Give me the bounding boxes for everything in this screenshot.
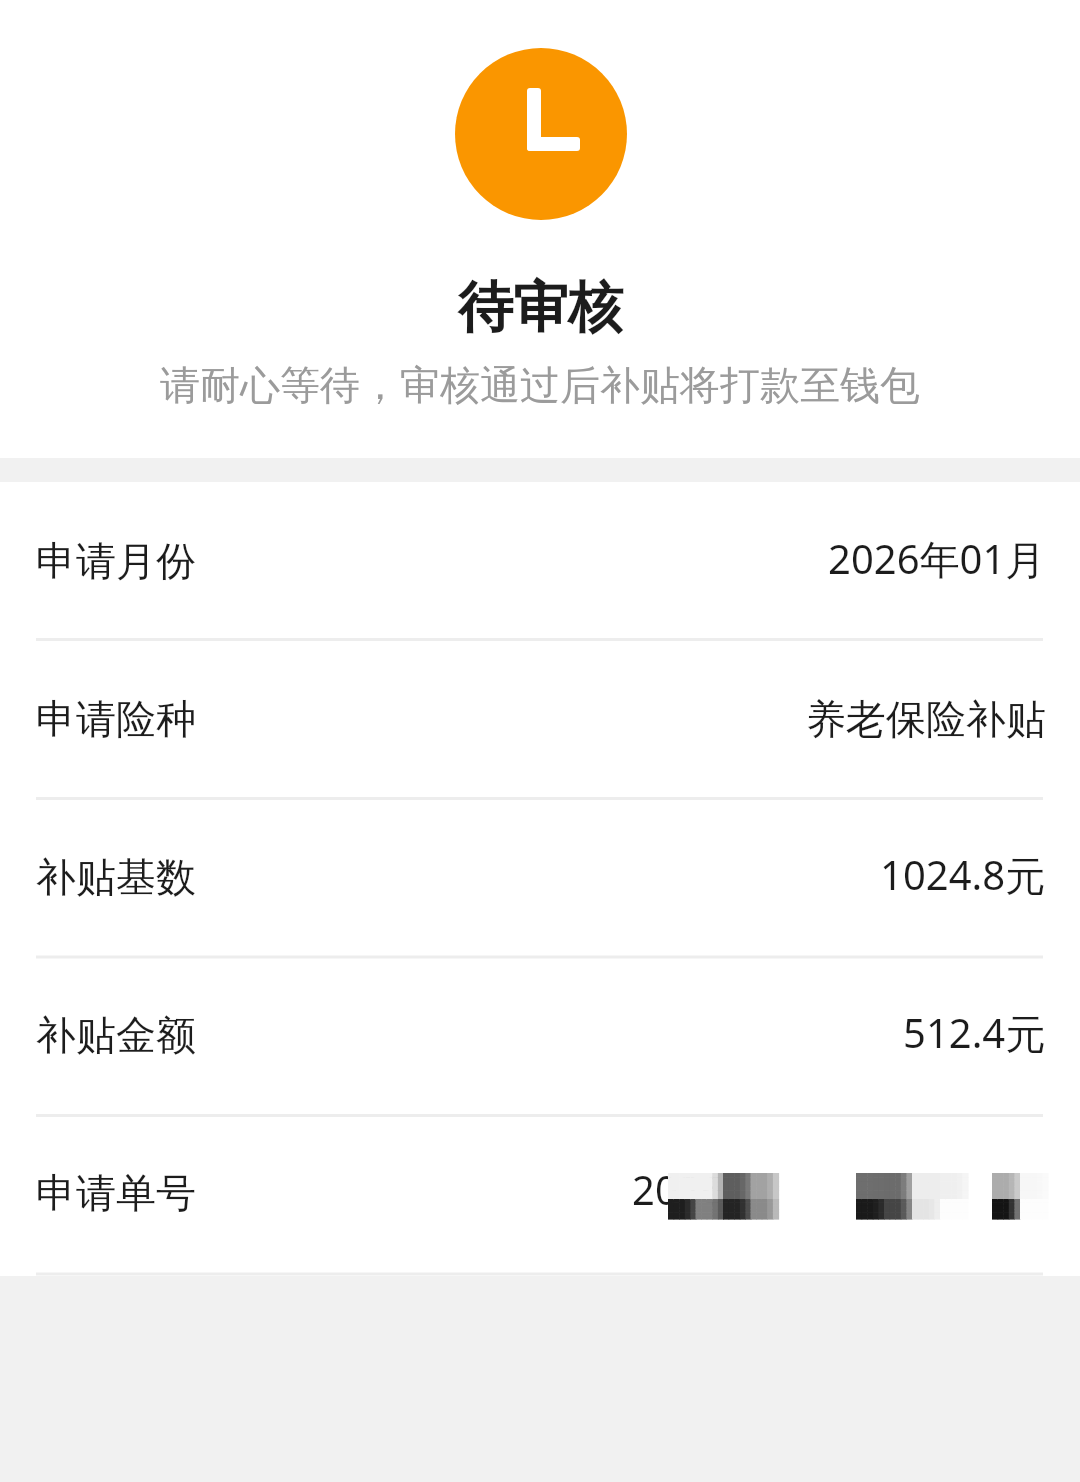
- other: Pending review: [455, 48, 627, 220]
- staticText: 512.4元: [903, 1005, 1046, 1060]
- staticText: 补贴基数: [36, 852, 196, 902]
- staticText: 请耐心等待，审核通过后补贴将打款至钱包: [160, 360, 920, 410]
- button[interactable]: 补贴基数: [0, 798, 1080, 956]
- staticText: 申请险种: [36, 694, 196, 744]
- button[interactable]: 申请险种: [0, 640, 1080, 798]
- staticText: 申请月份: [36, 536, 196, 586]
- button[interactable]: 补贴金额: [0, 956, 1080, 1114]
- staticText: 补贴金额: [36, 1010, 196, 1060]
- button[interactable]: 申请单号: [0, 1114, 1080, 1272]
- staticText: 1024.8元: [880, 847, 1046, 902]
- staticText: 养老保险补贴: [806, 694, 1046, 744]
- staticText: 2026年01月: [828, 531, 1046, 586]
- button[interactable]: 申请月份: [0, 482, 1080, 640]
- staticText: 待审核: [458, 273, 623, 342]
- staticText: 2026: [632, 1162, 724, 1216]
- staticText: 申请单号: [36, 1168, 196, 1218]
